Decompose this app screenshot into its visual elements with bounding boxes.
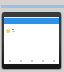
button[interactable]: Tab (4, 57, 15, 64)
button[interactable]: Tab (15, 57, 26, 64)
button[interactable]: Tab (48, 57, 59, 64)
button[interactable] (4, 28, 59, 33)
button[interactable]: Tab (26, 57, 37, 64)
button[interactable]: Tab (37, 57, 48, 64)
